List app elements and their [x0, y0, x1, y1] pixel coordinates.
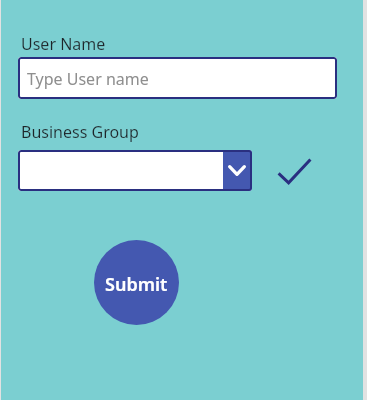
- staticText: Type User name: [27, 68, 149, 90]
- button[interactable]: Show business groups: [223, 150, 252, 191]
- button[interactable]: Show business groups: [18, 150, 252, 191]
- staticText: User Name: [21, 33, 106, 55]
- staticText: Submit: [105, 272, 168, 297]
- button[interactable]: Submit: [94, 240, 179, 325]
- other: Validated: [277, 157, 312, 184]
- staticText: Business Group: [21, 121, 139, 143]
- button[interactable]: Type User name: [18, 57, 337, 99]
